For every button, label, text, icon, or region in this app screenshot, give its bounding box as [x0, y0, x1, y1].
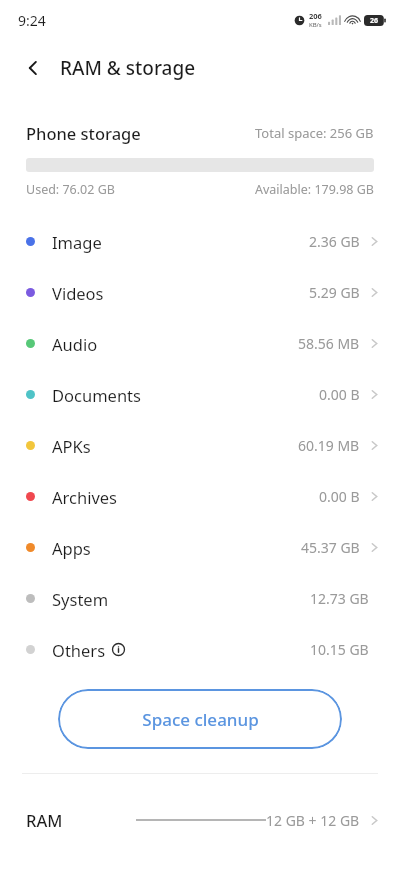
button[interactable]: Archives [0, 471, 400, 522]
staticText: Others [52, 639, 106, 661]
button[interactable]: RAM [0, 796, 400, 844]
button[interactable]: Image [0, 216, 400, 267]
staticText: 58.56 MB [298, 334, 360, 353]
staticText: System [52, 588, 109, 610]
staticText: 9:24 [18, 11, 46, 30]
staticText: APKs [52, 435, 91, 457]
button[interactable]: Space cleanup [58, 689, 342, 749]
staticText: Phone storage [26, 122, 141, 144]
button[interactable]: Others [0, 624, 400, 675]
staticText: 26 [370, 16, 379, 26]
button[interactable]: System [0, 573, 400, 624]
staticText: 206 [309, 11, 322, 21]
staticText: Used: 76.02 GB [26, 181, 115, 198]
staticText: KB/s [309, 21, 322, 29]
staticText: Videos [52, 282, 104, 304]
staticText: 2.36 GB [309, 232, 360, 251]
button[interactable]: Videos [0, 267, 400, 318]
staticText: 60.19 MB [298, 436, 360, 455]
button[interactable]: Back [18, 53, 48, 83]
button[interactable]: Apps [0, 522, 400, 573]
staticText: 45.37 GB [301, 538, 360, 557]
staticText: Audio [52, 333, 98, 355]
staticText: Documents [52, 384, 141, 406]
staticText: 12 GB + 12 GB [266, 811, 360, 830]
staticText: 0.00 B [319, 385, 360, 404]
staticText: Available: 179.98 GB [255, 181, 374, 198]
button[interactable]: Audio [0, 318, 400, 369]
staticText: 5.29 GB [309, 283, 360, 302]
staticText: 0.00 B [319, 487, 360, 506]
staticText: RAM [26, 809, 63, 831]
staticText: Space cleanup [142, 708, 259, 731]
staticText: Total space: 256 GB [255, 124, 374, 142]
button[interactable]: APKs [0, 420, 400, 471]
staticText: RAM & storage [60, 55, 196, 81]
staticText: 10.15 GB [310, 640, 369, 659]
staticText: Apps [52, 537, 91, 559]
button[interactable]: Documents [0, 369, 400, 420]
staticText: Archives [52, 486, 117, 508]
staticText: 12.73 GB [310, 589, 369, 608]
staticText: Image [52, 231, 102, 253]
